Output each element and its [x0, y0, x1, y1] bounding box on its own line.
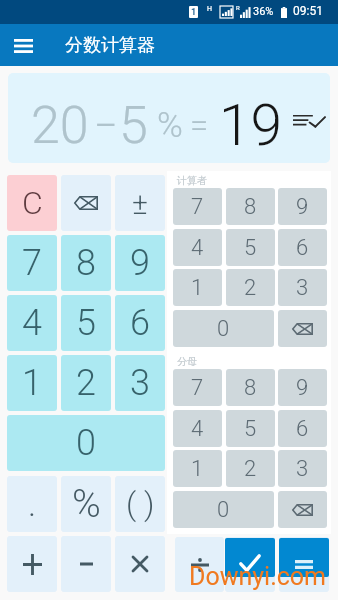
button[interactable]: Backspace — [61, 175, 111, 231]
button[interactable]: 4 — [173, 229, 222, 266]
staticText: 6 — [130, 302, 150, 344]
staticText: 分母 — [177, 355, 197, 368]
staticText: 7 — [22, 242, 42, 284]
button[interactable]: Backspace — [278, 310, 327, 347]
button[interactable]: Minus — [61, 536, 111, 592]
button[interactable]: 0 — [173, 310, 274, 347]
button[interactable]: 9 — [278, 188, 327, 225]
button[interactable]: 4 — [7, 295, 57, 351]
staticText: 3 — [130, 362, 150, 404]
button[interactable]: 9 — [278, 369, 327, 406]
staticText: 5 — [119, 95, 148, 156]
button[interactable]: 5 — [226, 410, 275, 447]
staticText: . — [28, 484, 37, 524]
button[interactable]: ± — [115, 175, 165, 231]
button[interactable]: ( ) — [115, 476, 165, 532]
button[interactable]: Divide — [175, 537, 224, 592]
staticText: 8 — [76, 242, 96, 284]
staticText: H — [207, 5, 212, 13]
staticText: 1 — [191, 7, 197, 18]
staticText: 5 — [244, 416, 257, 442]
button[interactable]: 5 — [61, 295, 111, 351]
button[interactable]: % — [61, 476, 111, 532]
staticText: = — [190, 106, 209, 145]
staticText: 09:51 — [293, 4, 323, 18]
staticText: 20 — [31, 95, 89, 156]
button[interactable]: Multiply — [115, 536, 165, 592]
staticText: 1 — [191, 456, 204, 482]
staticText: 1 — [22, 362, 42, 404]
button[interactable]: 9 — [115, 235, 165, 291]
button[interactable]: 1 — [7, 355, 57, 411]
staticText: 0 — [217, 497, 230, 523]
staticText: 3 — [296, 456, 309, 482]
staticText: 8 — [244, 194, 257, 220]
button[interactable]: Backspace — [278, 491, 327, 528]
staticText: 2 — [76, 362, 96, 404]
button[interactable]: 8 — [226, 369, 275, 406]
button[interactable]: 0 — [173, 491, 274, 528]
button[interactable]: Confirm — [225, 538, 275, 577]
button[interactable]: 3 — [278, 269, 327, 306]
staticText: Downyi.com — [189, 562, 327, 591]
button[interactable]: 0 — [7, 415, 165, 471]
staticText: 6 — [296, 416, 309, 442]
button[interactable]: Menu — [4, 27, 42, 63]
staticText: % — [157, 105, 183, 146]
button[interactable]: 6 — [115, 295, 165, 351]
staticText: 9 — [130, 242, 150, 284]
button[interactable]: History — [291, 105, 327, 135]
button[interactable]: 8 — [61, 235, 111, 291]
button[interactable]: 1 — [173, 269, 222, 306]
staticText: 分数计算器 — [65, 34, 155, 57]
button[interactable]: 5 — [226, 229, 275, 266]
staticText: − — [94, 101, 118, 150]
button[interactable]: 7 — [7, 235, 57, 291]
button[interactable]: Equals — [279, 538, 329, 577]
staticText: 2 — [244, 456, 257, 482]
staticText: % — [72, 481, 101, 527]
staticText: 2 — [244, 275, 257, 301]
staticText: 19 — [219, 92, 283, 159]
button[interactable]: 6 — [278, 229, 327, 266]
staticText: 1 — [191, 275, 204, 301]
staticText: 9 — [296, 375, 309, 401]
button[interactable]: 2 — [226, 269, 275, 306]
staticText: 9 — [296, 194, 309, 220]
staticText: 4 — [22, 302, 42, 344]
button[interactable]: 2 — [61, 355, 111, 411]
button[interactable]: . — [7, 476, 57, 532]
staticText: 8 — [244, 375, 257, 401]
staticText: 计算者 — [177, 174, 207, 187]
staticText: 0 — [217, 316, 230, 342]
button[interactable]: 3 — [115, 355, 165, 411]
button[interactable]: Plus — [7, 536, 57, 592]
staticText: 36% — [253, 5, 274, 18]
staticText: 7 — [191, 194, 204, 220]
staticText: 0 — [76, 422, 96, 464]
button[interactable]: 1 — [173, 450, 222, 487]
button[interactable]: 2 — [226, 450, 275, 487]
staticText: 7 — [191, 375, 204, 401]
staticText: 5 — [76, 302, 96, 344]
button[interactable]: 3 — [278, 450, 327, 487]
staticText: 3 — [296, 275, 309, 301]
button[interactable]: 7 — [173, 369, 222, 406]
staticText: 4 — [191, 416, 204, 442]
staticText: 6 — [296, 235, 309, 261]
staticText: 4 — [191, 235, 204, 261]
button[interactable]: 4 — [173, 410, 222, 447]
button[interactable]: 8 — [226, 188, 275, 225]
button[interactable]: C — [7, 175, 57, 231]
button[interactable]: 6 — [278, 410, 327, 447]
staticText: ± — [132, 186, 148, 221]
staticText: C — [22, 184, 43, 222]
button[interactable]: 7 — [173, 188, 222, 225]
staticText: 5 — [244, 235, 257, 261]
staticText: ( ) — [126, 485, 155, 523]
staticText: R — [236, 4, 240, 11]
